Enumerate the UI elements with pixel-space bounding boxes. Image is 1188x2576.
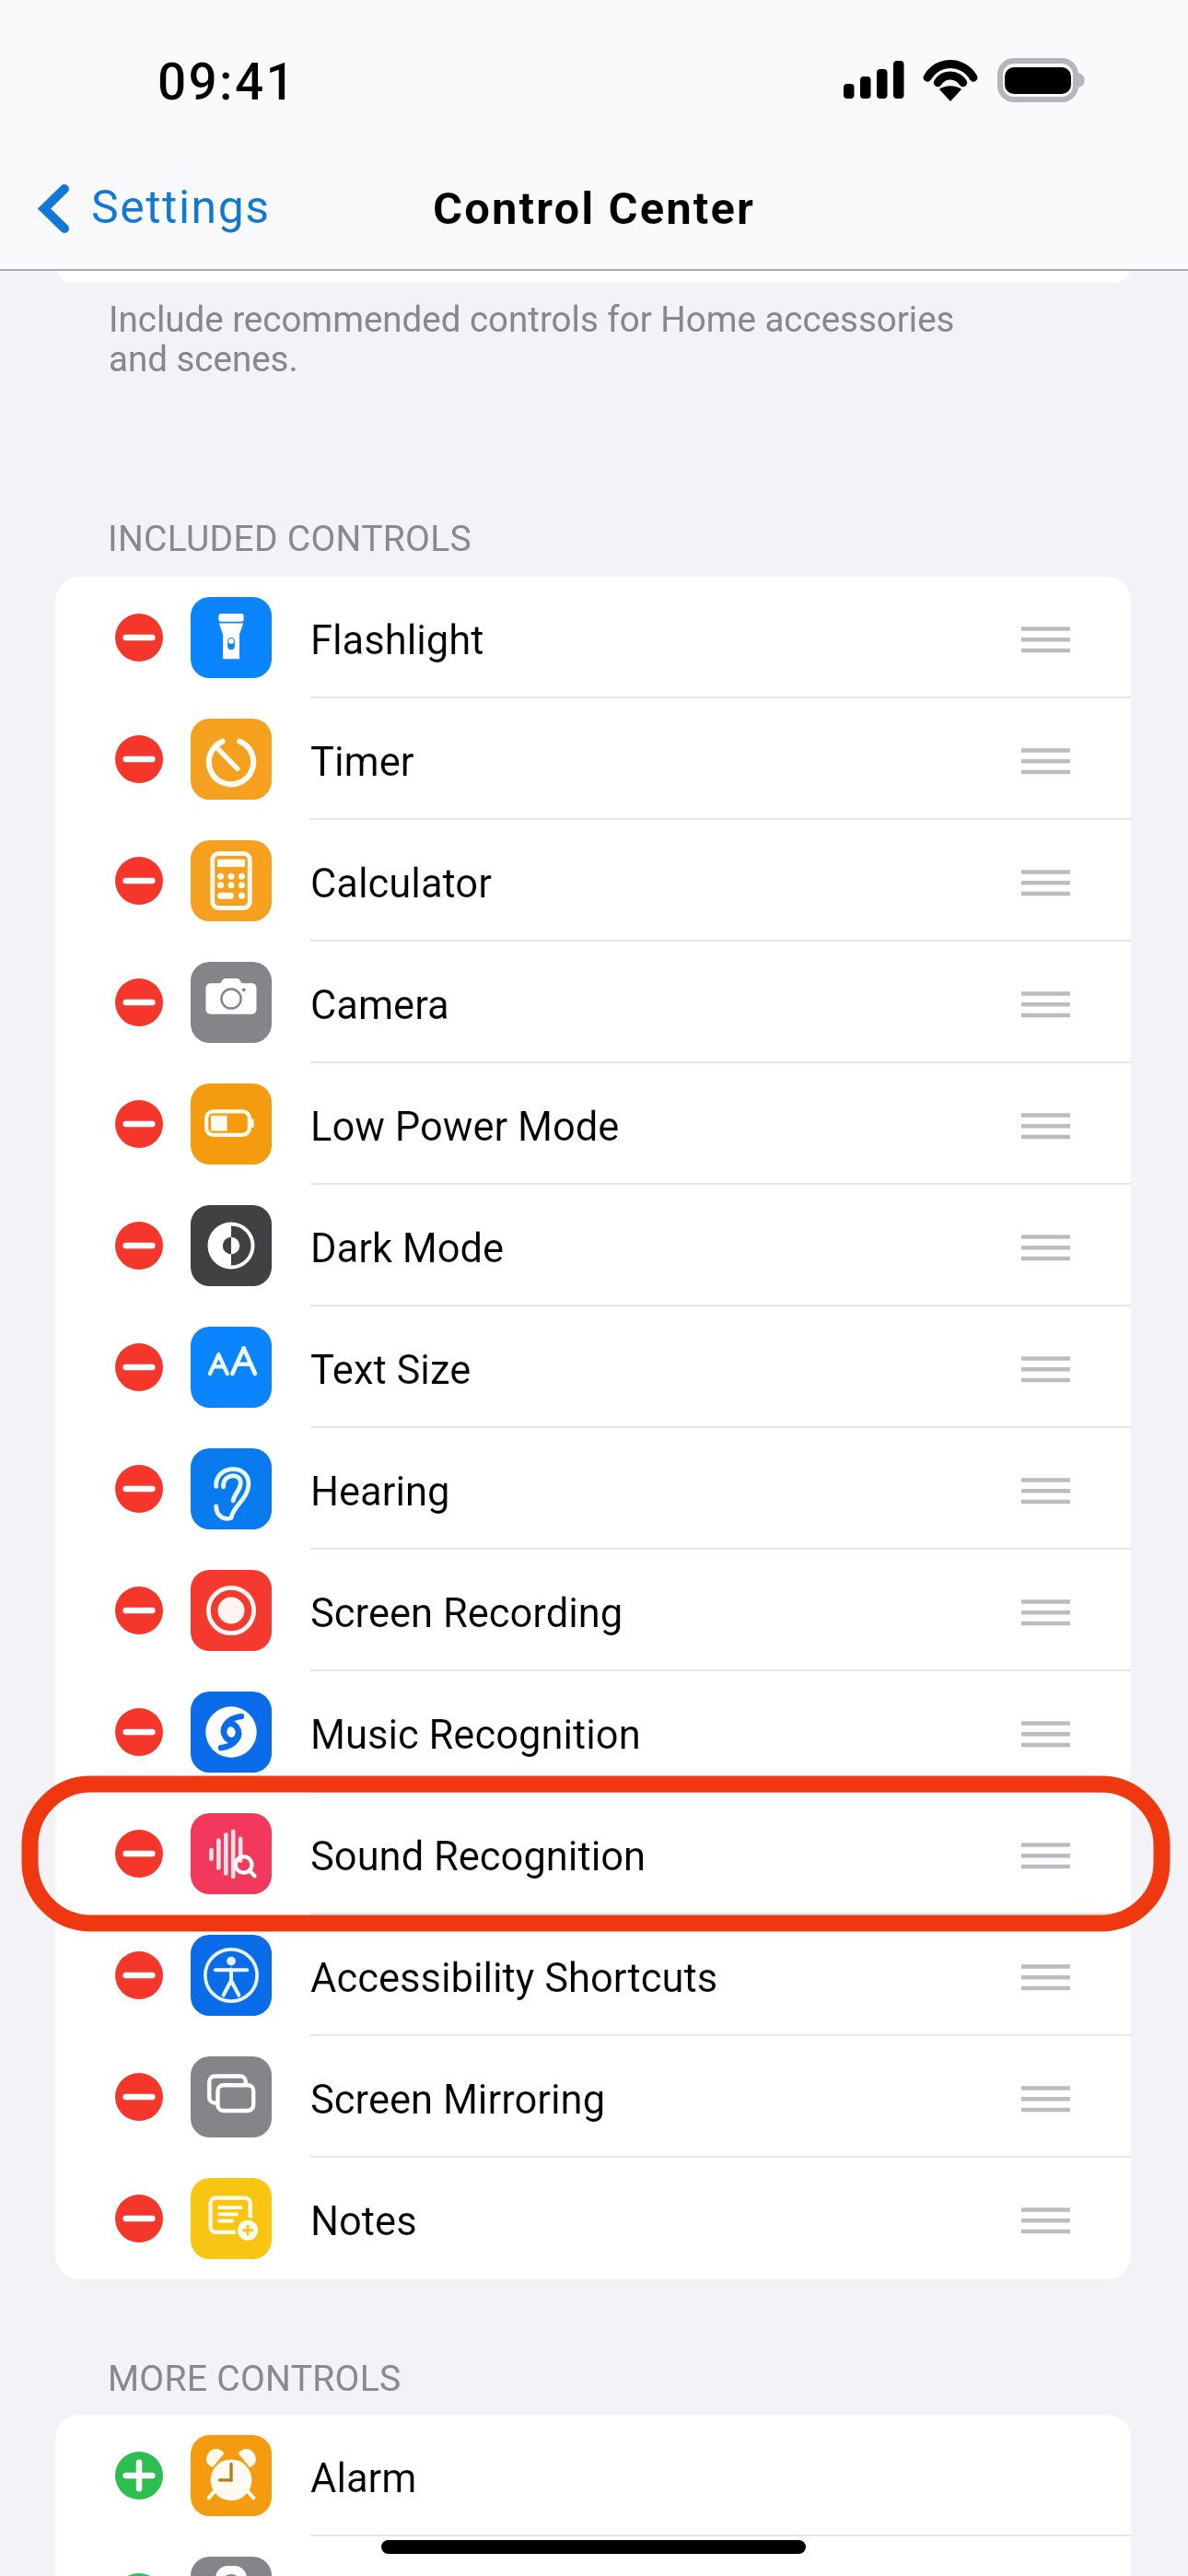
staticText: Flashlight xyxy=(310,617,484,664)
staticText: Alarm xyxy=(310,2455,417,2502)
other: Remove Dark Mode xyxy=(115,1222,163,1270)
other: Remove Music Recognition xyxy=(115,1708,163,1756)
button[interactable]: Remove Text Size xyxy=(55,1306,1131,1428)
other: Remove Low Power Mode xyxy=(115,1100,163,1148)
staticText: Accessibility Shortcuts xyxy=(310,1955,718,2002)
staticText: 09:41 xyxy=(157,53,297,111)
other: Remove Hearing xyxy=(115,1465,163,1513)
staticText: Include recommended controls for Home ac… xyxy=(109,299,955,380)
other: Remove Camera xyxy=(115,978,163,1026)
staticText: Dark Mode xyxy=(310,1225,505,1272)
button[interactable]: Back to Settings xyxy=(26,170,287,247)
button[interactable]: Remove Accessibility Shortcuts xyxy=(55,1914,1131,2036)
staticText: Hearing xyxy=(310,1469,450,1516)
staticText: Settings xyxy=(91,181,271,235)
button[interactable]: Remove Hearing xyxy=(55,1428,1131,1550)
other: Remove Calculator xyxy=(115,857,163,905)
staticText: Music Recognition xyxy=(310,1712,641,1759)
staticText: Notes xyxy=(310,2198,417,2245)
other: Remove Text Size xyxy=(115,1343,163,1391)
other: Add Alarm xyxy=(115,2452,163,2500)
button[interactable]: Remove Screen Recording xyxy=(55,1550,1131,1671)
other: Remove Screen Mirroring xyxy=(115,2073,163,2121)
staticText: Low Power Mode xyxy=(310,1104,620,1151)
staticText: Screen Recording xyxy=(310,1590,623,1637)
other: Remove Flashlight xyxy=(115,614,163,662)
button[interactable]: Remove Sound Recognition xyxy=(55,1793,1131,1914)
staticText: Timer xyxy=(310,739,414,786)
other: Add Apple TV Remote xyxy=(115,2573,163,2576)
other: Remove Timer xyxy=(115,735,163,783)
button[interactable]: Add Apple TV Remote xyxy=(55,2536,1131,2576)
button[interactable]: Remove Camera xyxy=(55,942,1131,1063)
button[interactable]: Remove Calculator xyxy=(55,820,1131,942)
button[interactable]: Remove Dark Mode xyxy=(55,1185,1131,1306)
staticText: Sound Recognition xyxy=(310,1833,646,1880)
button[interactable]: Remove Low Power Mode xyxy=(55,1063,1131,1185)
button[interactable]: Remove Screen Mirroring xyxy=(55,2036,1131,2158)
other: Remove Sound Recognition xyxy=(115,1830,163,1878)
staticText: Camera xyxy=(310,982,449,1029)
other: Remove Notes xyxy=(115,2195,163,2242)
staticText: INCLUDED CONTROLS xyxy=(108,518,472,560)
button[interactable]: Remove Notes xyxy=(55,2158,1131,2279)
other: Remove Accessibility Shortcuts xyxy=(115,1951,163,1999)
staticText: Control Center xyxy=(433,182,756,235)
staticText: Text Size xyxy=(310,1347,472,1394)
other: Remove Screen Recording xyxy=(115,1587,163,1634)
button[interactable]: Remove Flashlight xyxy=(55,577,1131,698)
staticText: MORE CONTROLS xyxy=(108,2358,402,2400)
button[interactable]: Remove Timer xyxy=(55,698,1131,820)
staticText: Screen Mirroring xyxy=(310,2077,606,2124)
button[interactable]: Remove Music Recognition xyxy=(55,1671,1131,1793)
staticText: Calculator xyxy=(310,861,492,907)
button[interactable]: Add Alarm xyxy=(55,2415,1131,2536)
